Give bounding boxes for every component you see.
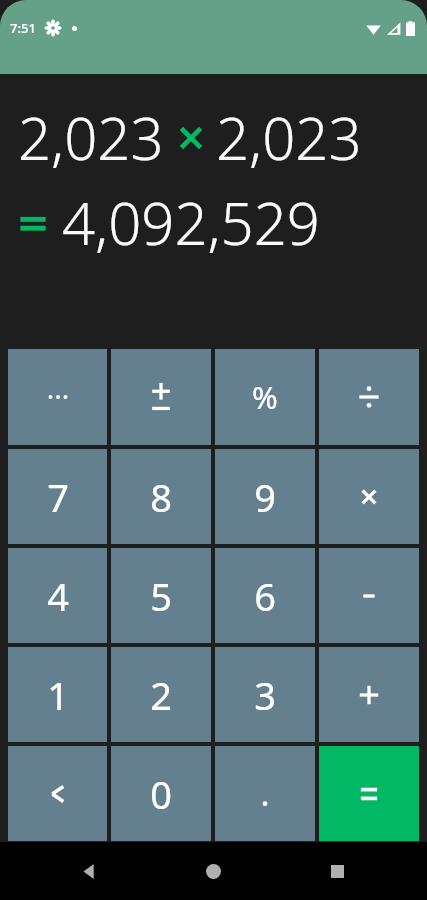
button[interactable]: 4 — [8, 548, 107, 643]
staticText: 3 — [254, 669, 276, 721]
button[interactable]: 7 — [8, 449, 107, 544]
staticText: % — [252, 376, 278, 418]
button[interactable]: Divide — [319, 349, 419, 445]
button[interactable]: 3 — [215, 647, 315, 742]
button[interactable]: 5 — [111, 548, 211, 643]
button[interactable]: Plus minus — [111, 349, 211, 445]
button[interactable]: Multiply — [319, 449, 419, 544]
staticText: 9 — [254, 471, 276, 523]
button[interactable]: % — [215, 349, 315, 445]
staticText: 6 — [254, 570, 276, 622]
button[interactable]: 9 — [215, 449, 315, 544]
button[interactable]: Minus — [319, 548, 419, 643]
staticText: 0 — [150, 768, 172, 820]
staticText: 8 — [150, 471, 172, 523]
staticText: 4,092,529 — [62, 183, 320, 262]
staticText: 1 — [47, 669, 69, 721]
button[interactable]: 0 — [111, 746, 211, 841]
button[interactable]: Back — [71, 853, 107, 889]
staticText: 4 — [47, 570, 69, 622]
staticText: 7 — [47, 471, 69, 523]
button[interactable]: 8 — [111, 449, 211, 544]
button[interactable]: More options — [8, 349, 107, 445]
button[interactable]: 6 — [215, 548, 315, 643]
button[interactable]: Plus — [319, 647, 419, 742]
button[interactable]: Equals — [319, 746, 419, 841]
button[interactable]: Recent apps — [319, 853, 355, 889]
button[interactable]: 1 — [8, 647, 107, 742]
staticText: 2,023 — [216, 98, 362, 177]
button[interactable]: Home — [195, 853, 231, 889]
staticText: 5 — [150, 570, 172, 622]
button[interactable]: Backspace — [8, 746, 107, 841]
staticText: 2,023 — [18, 98, 164, 177]
button[interactable]: Decimal point — [215, 746, 315, 841]
button[interactable]: 2 — [111, 647, 211, 742]
staticText: 2 — [150, 669, 172, 721]
staticText: 7:51 — [10, 19, 36, 37]
